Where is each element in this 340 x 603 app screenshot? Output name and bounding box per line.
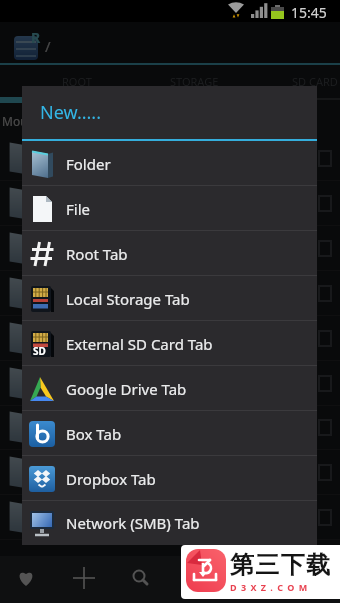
staticText: SD CARD [292,74,338,89]
staticText: New..... [40,100,102,125]
staticText: 第三下载 [229,550,331,580]
staticText: D 3 X Z . C O M [230,581,309,593]
button[interactable]: Local Storage Tab [22,276,317,321]
staticText: Google Drive Tab [66,379,187,399]
staticText: / [45,36,51,56]
button[interactable]: 第三下载 [181,545,340,599]
button[interactable]: Google Drive Tab [22,366,317,411]
button[interactable]: Dropbox Tab [22,456,317,501]
button[interactable]: SD [22,321,317,366]
staticText: 15:45 [291,3,327,22]
button[interactable]: Box Tab [22,411,317,456]
staticText: Local Storage Tab [66,289,190,309]
staticText: STORAGE [170,74,219,89]
staticText: Mount R/O [2,113,64,129]
staticText: SD [33,344,46,358]
staticText: Dropbox Tab [66,469,156,489]
staticText: R [31,28,41,47]
staticText: External SD Card Tab [66,334,213,354]
button[interactable]: Folder [22,141,317,186]
staticText: Folder [66,154,111,174]
button[interactable]: Network (SMB) Tab [22,501,317,545]
staticText: Root Tab [66,244,128,264]
button[interactable]: Root Tab [22,231,317,276]
staticText: Box Tab [66,424,122,444]
staticText: Network (SMB) Tab [66,513,200,533]
staticText: ROOT [62,74,92,89]
staticText: File [66,199,90,219]
button[interactable]: File [22,186,317,231]
